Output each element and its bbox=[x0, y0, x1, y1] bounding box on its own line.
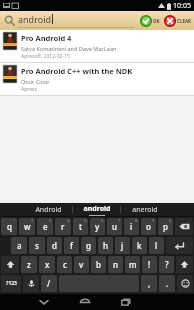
other: Search bbox=[4, 15, 15, 26]
staticText: 0 bbox=[169, 218, 172, 223]
button[interactable]: 2 bbox=[19, 218, 35, 235]
button[interactable]: Pro Android 4 bbox=[0, 30, 194, 62]
button[interactable]: 1 bbox=[1, 218, 17, 235]
staticText: m bbox=[129, 259, 137, 270]
staticText: 10:05 bbox=[173, 1, 191, 11]
staticText: i bbox=[130, 221, 133, 232]
staticText: n bbox=[113, 259, 119, 270]
button[interactable]: Enter bbox=[166, 237, 193, 254]
staticText: 7 bbox=[118, 218, 121, 223]
staticText: android bbox=[18, 13, 51, 25]
staticText: j bbox=[121, 240, 124, 251]
button[interactable]: 8 bbox=[124, 218, 139, 235]
button[interactable]: k bbox=[132, 237, 147, 254]
button[interactable]: l bbox=[149, 237, 164, 254]
staticText: d bbox=[52, 240, 57, 251]
button[interactable]: Hide keyboard bbox=[35, 294, 53, 310]
button[interactable]: x bbox=[39, 256, 55, 273]
staticText: CLEAR bbox=[177, 18, 191, 24]
staticText: 1 bbox=[13, 218, 16, 223]
button[interactable]: Pro Android C++ with the NDK bbox=[0, 63, 194, 95]
staticText: k bbox=[137, 240, 142, 251]
staticText: x bbox=[45, 259, 50, 270]
staticText: v bbox=[79, 259, 84, 270]
button[interactable]: Emoji bbox=[177, 275, 193, 292]
button[interactable]: Recent apps bbox=[117, 294, 135, 310]
button[interactable]: ?123 bbox=[1, 275, 21, 292]
button[interactable]: 5 bbox=[73, 218, 88, 235]
staticText: q bbox=[7, 221, 12, 232]
button[interactable]: z bbox=[21, 256, 37, 273]
button[interactable]: 4 bbox=[55, 218, 71, 235]
staticText: s bbox=[35, 240, 39, 251]
staticText: b bbox=[96, 259, 101, 270]
button[interactable]: Android bbox=[25, 203, 72, 216]
button[interactable]: android bbox=[73, 203, 120, 216]
staticText: w bbox=[24, 221, 31, 232]
button[interactable]: 6 bbox=[90, 218, 105, 235]
staticText: 4 bbox=[67, 218, 70, 223]
button[interactable]: 3 bbox=[37, 218, 53, 235]
staticText: u bbox=[112, 221, 118, 232]
staticText: Apress bbox=[21, 86, 37, 93]
button[interactable]: 9 bbox=[141, 218, 156, 235]
staticText: p bbox=[163, 221, 168, 232]
staticText: c bbox=[63, 259, 67, 270]
button[interactable]: f bbox=[64, 237, 79, 254]
staticText: Android bbox=[35, 205, 62, 215]
staticText: 5 bbox=[84, 218, 87, 223]
staticText: aneroid bbox=[132, 205, 158, 215]
staticText: ? bbox=[165, 259, 169, 270]
button[interactable]: Clear bbox=[164, 15, 191, 27]
staticText: g bbox=[86, 240, 91, 251]
button[interactable]: Shift bbox=[1, 256, 19, 273]
button[interactable]: Shift bbox=[176, 256, 193, 273]
staticText: Apress®, 2012-02-15 bbox=[21, 53, 70, 60]
button[interactable]: s bbox=[29, 237, 45, 254]
staticText: 9 bbox=[152, 218, 155, 223]
button[interactable]: d bbox=[47, 237, 62, 254]
button[interactable]: 7 bbox=[107, 218, 122, 235]
staticText: o bbox=[146, 221, 151, 232]
button[interactable]: b bbox=[91, 256, 106, 273]
button[interactable]: m bbox=[125, 256, 140, 273]
button[interactable]: OK bbox=[140, 15, 160, 27]
staticText: . bbox=[166, 278, 169, 289]
button[interactable]: a bbox=[11, 237, 27, 254]
staticText: Pro Android 4 bbox=[21, 33, 72, 43]
staticText: ! bbox=[148, 259, 151, 270]
button[interactable]: Home bbox=[76, 294, 94, 310]
staticText: e bbox=[43, 221, 48, 232]
staticText: r bbox=[61, 221, 65, 232]
staticText: 6 bbox=[101, 218, 104, 223]
staticText: ?123 bbox=[6, 280, 17, 287]
staticText: f bbox=[70, 240, 73, 251]
button[interactable]: aneroid bbox=[121, 203, 168, 216]
button[interactable]: . bbox=[159, 275, 175, 292]
button[interactable]: Delete bbox=[175, 218, 193, 235]
staticText: OK bbox=[153, 18, 160, 24]
button[interactable]: g bbox=[81, 237, 96, 254]
staticText: l bbox=[155, 240, 158, 251]
staticText: y bbox=[95, 221, 100, 232]
button[interactable]: ? bbox=[159, 256, 174, 273]
staticText: 3 bbox=[49, 218, 52, 223]
button[interactable]: ! bbox=[142, 256, 157, 273]
staticText: 2 bbox=[31, 218, 34, 223]
staticText: Onur Cinar bbox=[21, 78, 50, 85]
button[interactable]: n bbox=[108, 256, 123, 273]
staticText: / bbox=[47, 278, 51, 289]
button[interactable]: h bbox=[98, 237, 113, 254]
button[interactable]: , bbox=[141, 275, 157, 292]
staticText: a bbox=[17, 240, 22, 251]
button[interactable]: v bbox=[74, 256, 89, 273]
staticText: h bbox=[103, 240, 109, 251]
button[interactable]: / bbox=[41, 275, 57, 292]
staticText: , bbox=[148, 278, 151, 289]
button[interactable]: 0 bbox=[158, 218, 173, 235]
button[interactable]: c bbox=[57, 256, 72, 273]
staticText: t bbox=[79, 221, 83, 232]
button[interactable]: j bbox=[115, 237, 130, 254]
button[interactable]: Voice input bbox=[23, 275, 39, 292]
